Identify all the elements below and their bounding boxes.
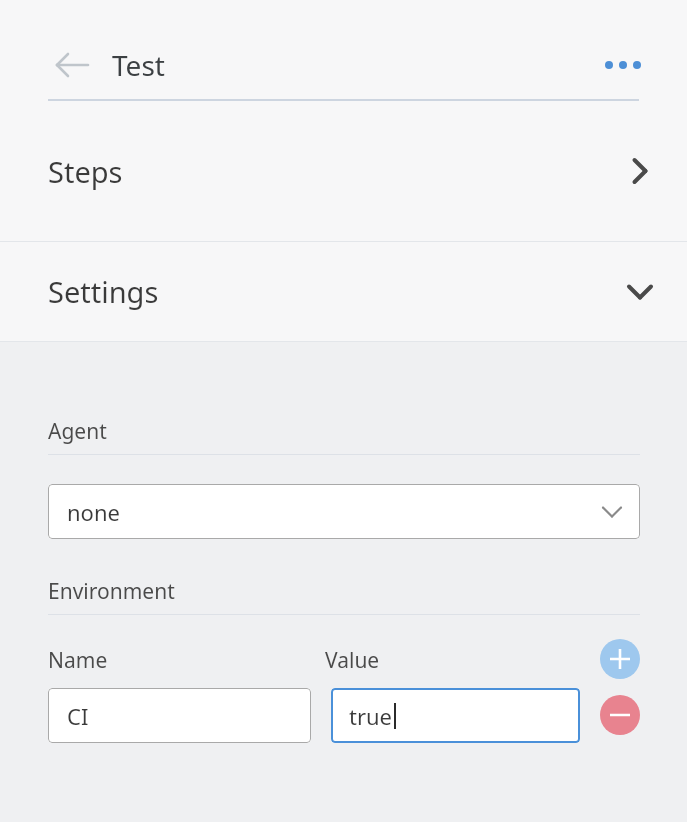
button[interactable]: Back — [45, 41, 93, 89]
button[interactable]: More options — [596, 45, 640, 85]
button[interactable]: Add variable — [600, 639, 640, 679]
staticText: Agent — [48, 417, 107, 446]
staticText: Name — [48, 646, 108, 675]
staticText: Environment — [48, 577, 175, 606]
button[interactable]: Settings — [0, 242, 687, 341]
button[interactable]: Steps — [0, 101, 687, 241]
staticText: Settings — [48, 272, 616, 311]
staticText: none — [67, 497, 600, 527]
button[interactable]: none — [48, 484, 640, 539]
staticText: CI — [67, 701, 89, 731]
staticText: true — [349, 701, 393, 731]
button[interactable]: Remove variable — [600, 695, 640, 735]
button[interactable]: true — [331, 688, 580, 743]
staticText: Test — [112, 46, 165, 84]
staticText: Steps — [48, 152, 616, 191]
button[interactable]: CI — [48, 688, 311, 743]
staticText: Value — [325, 646, 380, 675]
